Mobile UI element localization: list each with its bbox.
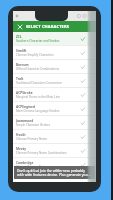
staticText: Chinese Primary Notes — [16, 165, 47, 169]
button[interactable]: Selected — [78, 118, 87, 127]
button[interactable]: Selected — [78, 104, 87, 113]
button[interactable]: Don't quit but Join the wilderness proba… — [14, 166, 95, 179]
button[interactable]: Simlift — [13, 46, 96, 60]
staticText: Southern Character and Strokes — [16, 39, 60, 43]
staticText: ZCL — [16, 35, 22, 39]
staticText: Hoolit — [16, 133, 26, 137]
staticText: Simple Character Strokes — [16, 123, 51, 127]
staticText: Official Character Combinations — [16, 67, 60, 71]
staticText: ACPEngined — [16, 105, 35, 109]
button[interactable]: Meety — [13, 144, 96, 158]
staticText: Simlift — [16, 49, 27, 53]
staticText: Don't quit but Join the wilderness proba… — [17, 168, 92, 177]
button[interactable]: Selected — [78, 90, 87, 99]
button[interactable]: Selected — [78, 146, 87, 155]
staticText: Cambridge — [16, 161, 34, 165]
button[interactable]: Selected — [78, 160, 87, 169]
staticText: Traditional Characters Conversion — [16, 81, 62, 85]
button[interactable]: Selected — [78, 48, 87, 57]
button[interactable]: Close — [13, 21, 26, 32]
button[interactable]: Selected — [78, 76, 87, 85]
button[interactable]: Selected — [78, 62, 87, 71]
staticText: Jazzamund — [16, 119, 34, 123]
staticText: Barnum — [16, 63, 29, 67]
staticText: Main Chinese Language Strokes — [16, 109, 60, 113]
button[interactable]: ZCL — [13, 32, 96, 46]
button[interactable]: ACPEngined — [13, 102, 96, 116]
staticText: Marginal Pieces in the Main Line — [16, 95, 60, 99]
button[interactable]: ACPStroke — [13, 88, 96, 102]
staticText: Chinese Primary Notes — [16, 137, 47, 141]
button[interactable]: Cambridge — [13, 158, 96, 172]
staticText: Tralt — [16, 77, 24, 81]
button[interactable]: Selected — [78, 34, 87, 43]
staticText: Chinese Primary Notes Combinations — [16, 151, 67, 155]
button[interactable]: Hoolit — [13, 130, 96, 144]
button[interactable]: Tralt — [13, 74, 96, 88]
button[interactable]: Selected — [78, 132, 87, 141]
button[interactable]: Jazzamund — [13, 116, 96, 130]
button[interactable]: Barnum — [13, 60, 96, 74]
staticText: Chinese Simplify Characters — [16, 53, 54, 57]
staticText: ACPStroke — [16, 91, 33, 95]
staticText: Meety — [16, 147, 27, 151]
staticText: SELECT CHARACTERS — [26, 24, 70, 30]
